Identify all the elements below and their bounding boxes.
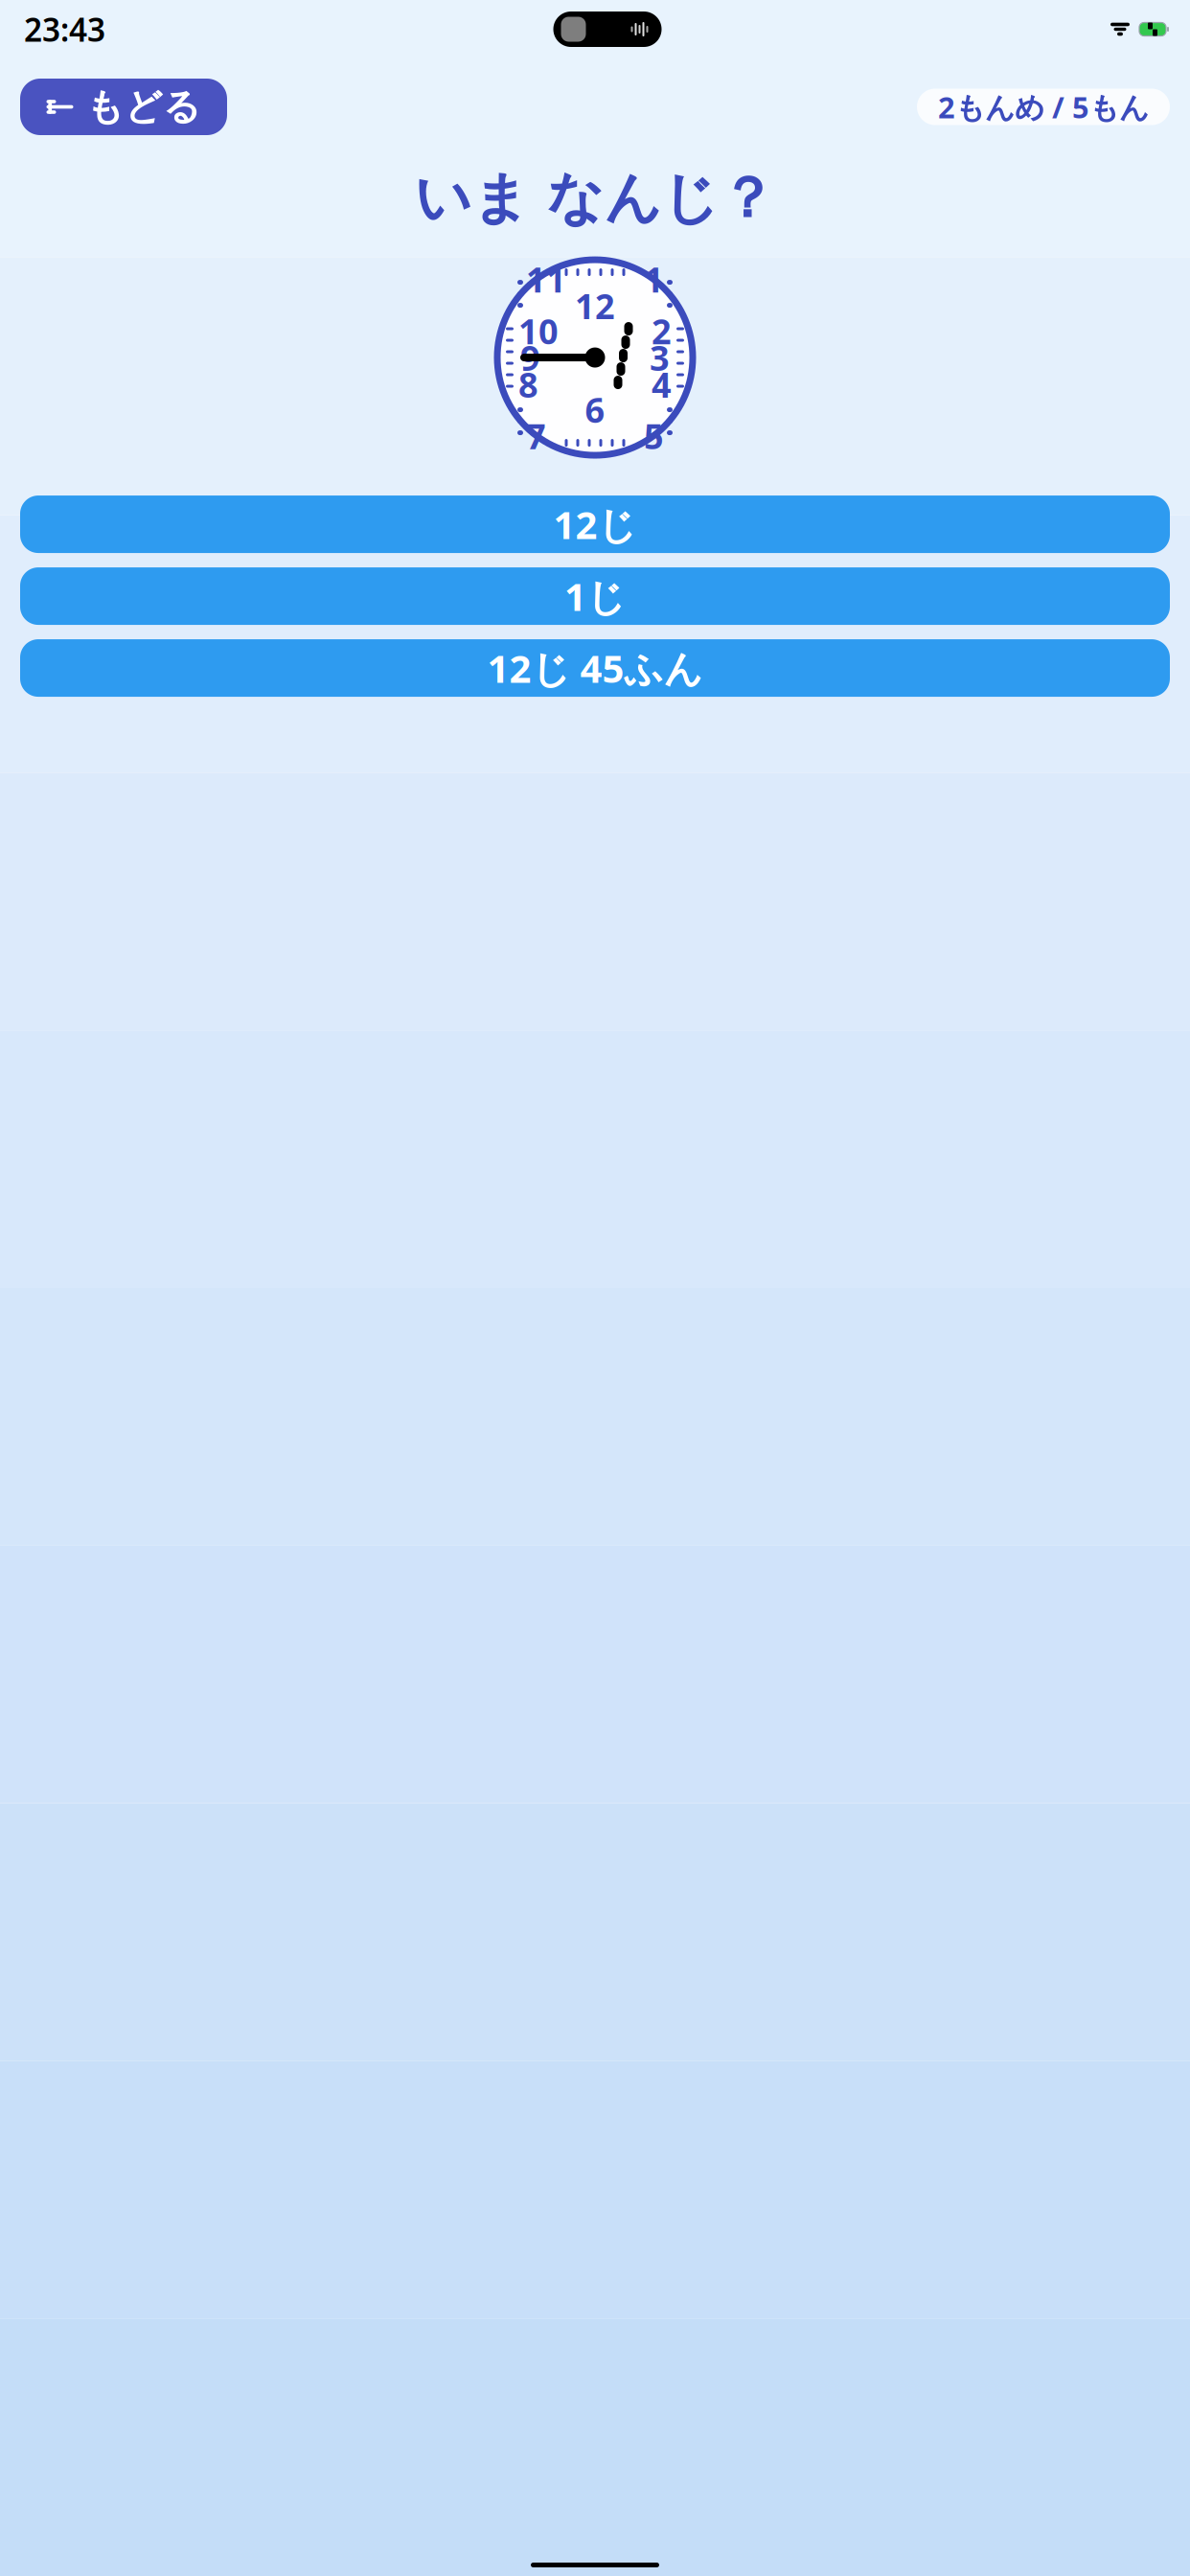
staticText: 2もんめ / 5もん bbox=[938, 87, 1149, 126]
staticText: 7 bbox=[526, 413, 546, 459]
button[interactable]: 2もんめ / 5もん bbox=[917, 89, 1170, 125]
button[interactable]: もどる bbox=[20, 79, 227, 135]
staticText: もどる bbox=[86, 84, 201, 130]
button[interactable]: 12じ 45ふん bbox=[20, 639, 1170, 697]
staticText: 6 bbox=[585, 386, 605, 432]
button[interactable]: 12じ bbox=[20, 496, 1170, 553]
staticText: 2 bbox=[652, 308, 672, 354]
staticText: 8 bbox=[518, 361, 538, 407]
staticText: 12じ bbox=[553, 499, 637, 550]
staticText: 4 bbox=[652, 361, 672, 407]
staticText: 5 bbox=[644, 413, 664, 459]
staticText: 3 bbox=[650, 335, 670, 380]
staticText: 11 bbox=[526, 256, 566, 302]
staticText: 9 bbox=[520, 335, 540, 380]
staticText: 12 bbox=[575, 283, 615, 329]
staticText: 1じ bbox=[564, 571, 626, 622]
staticText: 10 bbox=[518, 308, 559, 354]
staticText: 23:43 bbox=[24, 8, 105, 51]
staticText: 1 bbox=[644, 256, 664, 302]
staticText: いま なんじ？ bbox=[414, 164, 776, 233]
button[interactable]: 1じ bbox=[20, 567, 1170, 625]
staticText: 12じ 45ふん bbox=[487, 643, 703, 693]
